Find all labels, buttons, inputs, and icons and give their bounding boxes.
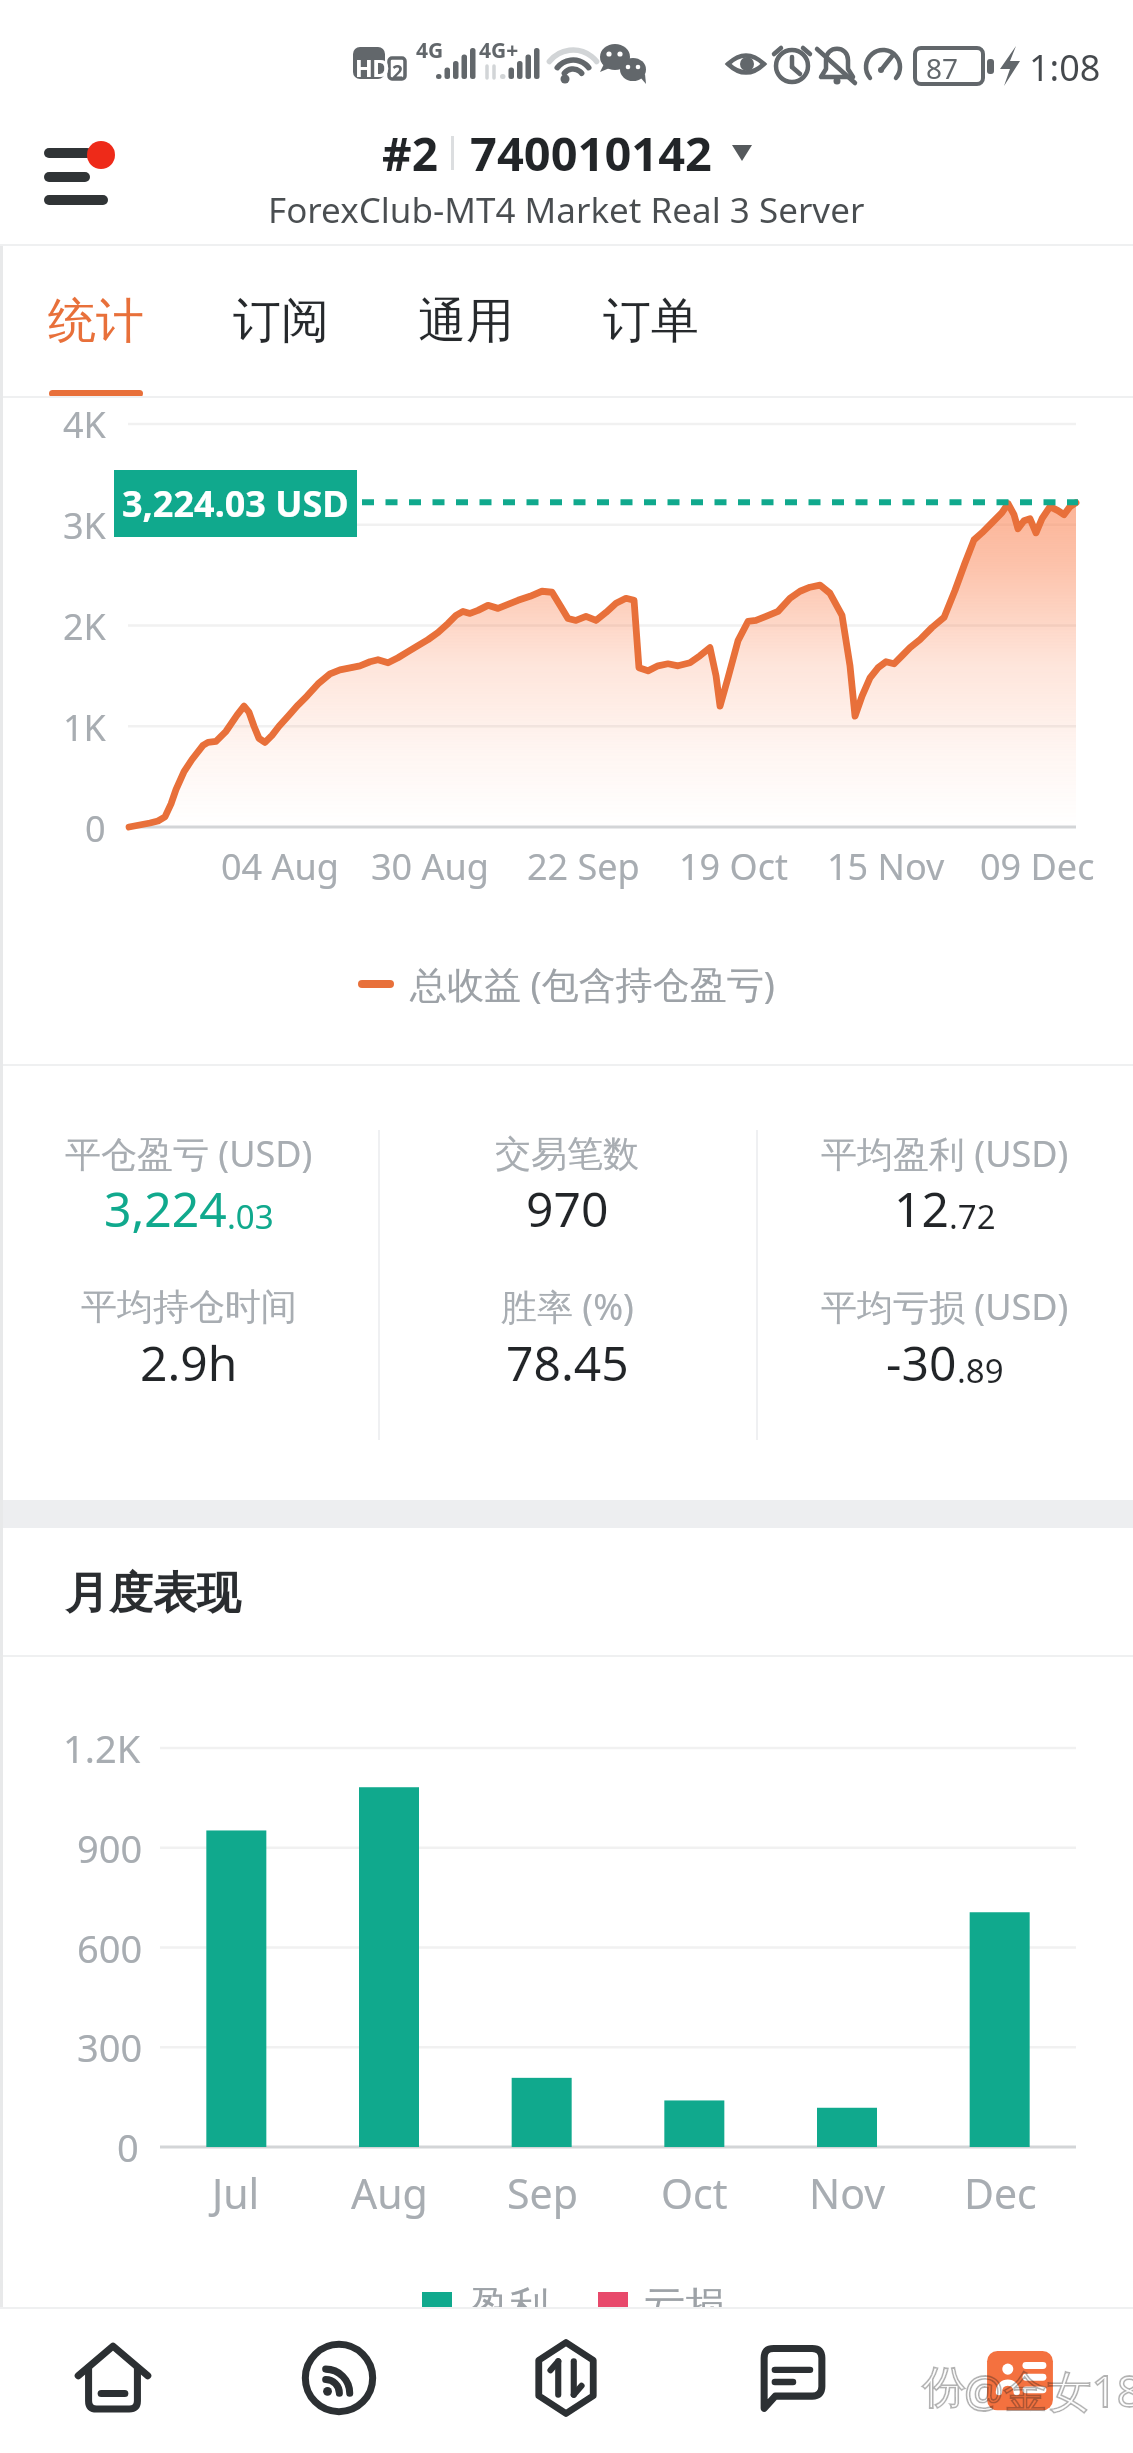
staticText: 3,224.03 USD bbox=[122, 479, 349, 528]
staticText: 78.45 bbox=[506, 1330, 629, 1395]
staticText: 1:08 bbox=[1029, 43, 1101, 92]
button[interactable]: Menu bbox=[34, 128, 134, 218]
button[interactable]: 交易笔数 bbox=[378, 1107, 756, 1254]
staticText: 2.9h bbox=[140, 1330, 238, 1395]
staticText: Jul bbox=[212, 2165, 260, 2221]
button[interactable]: 统计 bbox=[36, 246, 156, 398]
button[interactable]: 订单 bbox=[591, 246, 711, 398]
staticText: 15 Nov bbox=[827, 842, 945, 891]
staticText: 12 bbox=[894, 1176, 949, 1241]
staticText: 30 Aug bbox=[371, 842, 489, 891]
button[interactable]: 平均持仓时间 bbox=[0, 1260, 378, 1408]
staticText: 统计 bbox=[48, 291, 144, 351]
staticText: HD bbox=[355, 52, 390, 83]
staticText: 970 bbox=[526, 1176, 609, 1241]
button[interactable]: 平均盈利 (USD) bbox=[756, 1107, 1133, 1254]
staticText: 740010142 bbox=[470, 121, 712, 185]
staticText: 600 bbox=[77, 1922, 143, 1974]
staticText: .03 bbox=[227, 1194, 274, 1239]
button[interactable]: 胜率 (%) bbox=[378, 1260, 756, 1408]
staticText: 4G+ bbox=[479, 36, 519, 65]
staticText: 19 Oct bbox=[679, 842, 788, 891]
button[interactable]: Signals bbox=[226, 2307, 452, 2453]
staticText: #2 bbox=[382, 122, 439, 185]
staticText: 2K bbox=[63, 602, 106, 651]
staticText: 3,224 bbox=[104, 1176, 227, 1241]
staticText: 平均盈利 (USD) bbox=[821, 1129, 1069, 1178]
staticText: 通用 bbox=[418, 291, 514, 351]
staticText: 总收益 (包含持仓盈亏) bbox=[410, 958, 775, 1009]
staticText: 4G bbox=[416, 36, 444, 65]
staticText: Aug bbox=[351, 2165, 428, 2221]
staticText: 订单 bbox=[603, 291, 699, 351]
staticText: 4K bbox=[63, 400, 106, 449]
staticText: 平仓盈亏 (USD) bbox=[65, 1129, 313, 1178]
staticText: 0 bbox=[85, 804, 106, 853]
staticText: @金女18 bbox=[964, 2360, 1133, 2420]
staticText: 900 bbox=[77, 1822, 143, 1874]
button[interactable]: Trade bbox=[452, 2307, 679, 2453]
staticText: 订阅 bbox=[233, 291, 329, 351]
staticText: Nov bbox=[809, 2165, 885, 2221]
staticText: 09 Dec bbox=[980, 842, 1095, 891]
staticText: 2 bbox=[392, 59, 403, 85]
staticText: 平均持仓时间 bbox=[81, 1284, 297, 1329]
button[interactable]: 订阅 bbox=[221, 246, 341, 398]
button[interactable]: 通用 bbox=[406, 246, 526, 398]
button[interactable]: Home bbox=[0, 2307, 226, 2453]
staticText: 1K bbox=[63, 703, 106, 752]
button[interactable]: Chat bbox=[679, 2307, 906, 2453]
button[interactable]: Profile bbox=[906, 2307, 1133, 2453]
staticText: .72 bbox=[949, 1194, 996, 1239]
staticText: 87 bbox=[926, 49, 959, 87]
staticText: Oct bbox=[661, 2165, 728, 2221]
staticText: 胜率 (%) bbox=[501, 1282, 634, 1331]
staticText: Sep bbox=[507, 2165, 578, 2221]
staticText: 亏损 bbox=[645, 2281, 725, 2331]
staticText: 平均亏损 (USD) bbox=[821, 1282, 1069, 1331]
staticText: 3K bbox=[63, 501, 106, 550]
staticText: 0 bbox=[117, 2121, 139, 2173]
staticText: -30 bbox=[886, 1330, 957, 1395]
staticText: .89 bbox=[957, 1348, 1004, 1393]
staticText: 22 Sep bbox=[527, 842, 640, 891]
staticText: Dec bbox=[964, 2165, 1037, 2221]
staticText: 300 bbox=[77, 2021, 143, 2073]
staticText: 份 bbox=[922, 2360, 966, 2415]
staticText: 月度表现 bbox=[65, 1566, 241, 1621]
staticText: 04 Aug bbox=[221, 842, 339, 891]
staticText: ForexClub-MT4 Market Real 3 Server bbox=[268, 186, 865, 234]
button[interactable]: 平均亏损 (USD) bbox=[756, 1260, 1133, 1408]
staticText: 盈利 bbox=[469, 2281, 549, 2331]
staticText: 交易笔数 bbox=[495, 1131, 639, 1176]
staticText: 1.2K bbox=[63, 1722, 141, 1774]
button[interactable]: 平仓盈亏 (USD) bbox=[0, 1107, 378, 1254]
